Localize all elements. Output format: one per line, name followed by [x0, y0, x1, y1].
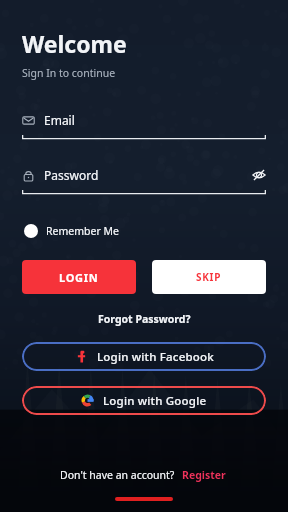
button[interactable]: Remember Me	[22, 221, 121, 241]
staticText: Don't have an account?	[60, 468, 175, 482]
button[interactable]: SKIP	[152, 260, 266, 294]
staticText: SKIP	[196, 270, 222, 284]
staticText: Forgot Password?	[98, 312, 191, 326]
button[interactable]: Show password	[252, 168, 266, 182]
staticText: Sign In to continue	[22, 66, 116, 80]
staticText: Login with Google	[103, 393, 207, 409]
button[interactable]: Login with Facebook	[22, 342, 266, 371]
staticText: Password	[44, 167, 252, 183]
staticText: Email	[44, 112, 266, 128]
staticText: Remember Me	[46, 224, 119, 238]
staticText: Register	[182, 468, 226, 482]
button[interactable]: Login with Google	[22, 386, 266, 415]
staticText: Welcome	[22, 28, 127, 59]
button[interactable]: Register	[180, 467, 228, 483]
button[interactable]: Email	[22, 112, 266, 140]
button[interactable]: Forgot Password?	[92, 310, 197, 328]
staticText: Login with Facebook	[97, 349, 214, 365]
button[interactable]: LOGIN	[22, 260, 136, 294]
button[interactable]: Password	[22, 167, 266, 195]
staticText: LOGIN	[59, 270, 99, 285]
